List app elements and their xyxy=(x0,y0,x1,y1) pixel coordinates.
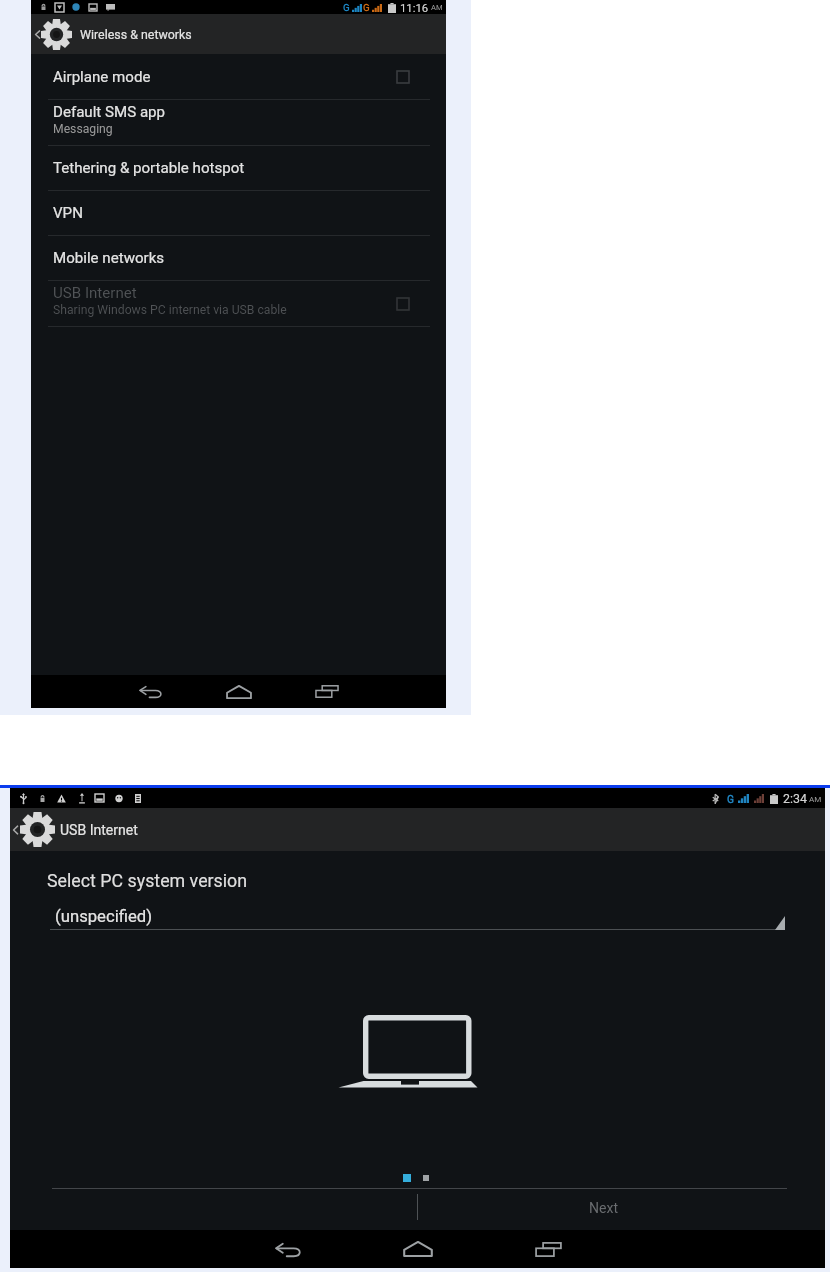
button[interactable]: Recent apps xyxy=(303,675,351,708)
button[interactable]: Home xyxy=(394,1230,442,1268)
staticText: Messaging xyxy=(53,122,113,136)
staticText: Select PC system version xyxy=(47,870,248,891)
staticText: Next xyxy=(589,1200,619,1216)
staticText: 11:16 xyxy=(400,1,429,14)
button[interactable]: VPN xyxy=(31,191,446,235)
staticText: Default SMS app xyxy=(53,103,166,121)
staticText: G xyxy=(343,2,350,13)
staticText: Mobile networks xyxy=(53,249,165,267)
staticText: VPN xyxy=(53,204,83,222)
staticText: 2:34 xyxy=(783,791,807,806)
button[interactable]: Default SMS app xyxy=(31,100,446,145)
staticText: AM xyxy=(431,3,443,12)
button[interactable]: Airplane mode xyxy=(31,54,446,99)
staticText: G xyxy=(727,793,734,805)
staticText: USB Internet xyxy=(60,822,138,838)
staticText: G xyxy=(363,2,370,13)
button[interactable]: Wireless & networks xyxy=(31,14,446,54)
button[interactable]: Back xyxy=(264,1230,312,1268)
button[interactable]: Mobile networks xyxy=(31,236,446,280)
button[interactable]: USB Internet xyxy=(10,808,825,851)
staticText: Tethering & portable hotspot xyxy=(53,159,245,177)
staticText: (unspecified) xyxy=(55,907,153,927)
staticText: Airplane mode xyxy=(53,68,151,86)
button[interactable]: Recent apps xyxy=(524,1230,572,1268)
staticText: AM xyxy=(809,794,822,803)
staticText: USB Internet xyxy=(53,284,137,302)
button[interactable]: Back xyxy=(126,675,174,708)
button[interactable]: Tethering & portable hotspot xyxy=(31,146,446,190)
staticText: Wireless & networks xyxy=(80,27,192,42)
button[interactable]: Home xyxy=(215,675,263,708)
staticText: Sharing Windows PC internet via USB cabl… xyxy=(53,303,287,317)
button[interactable]: USB Internet xyxy=(31,281,446,326)
button[interactable]: Next xyxy=(418,1190,790,1226)
